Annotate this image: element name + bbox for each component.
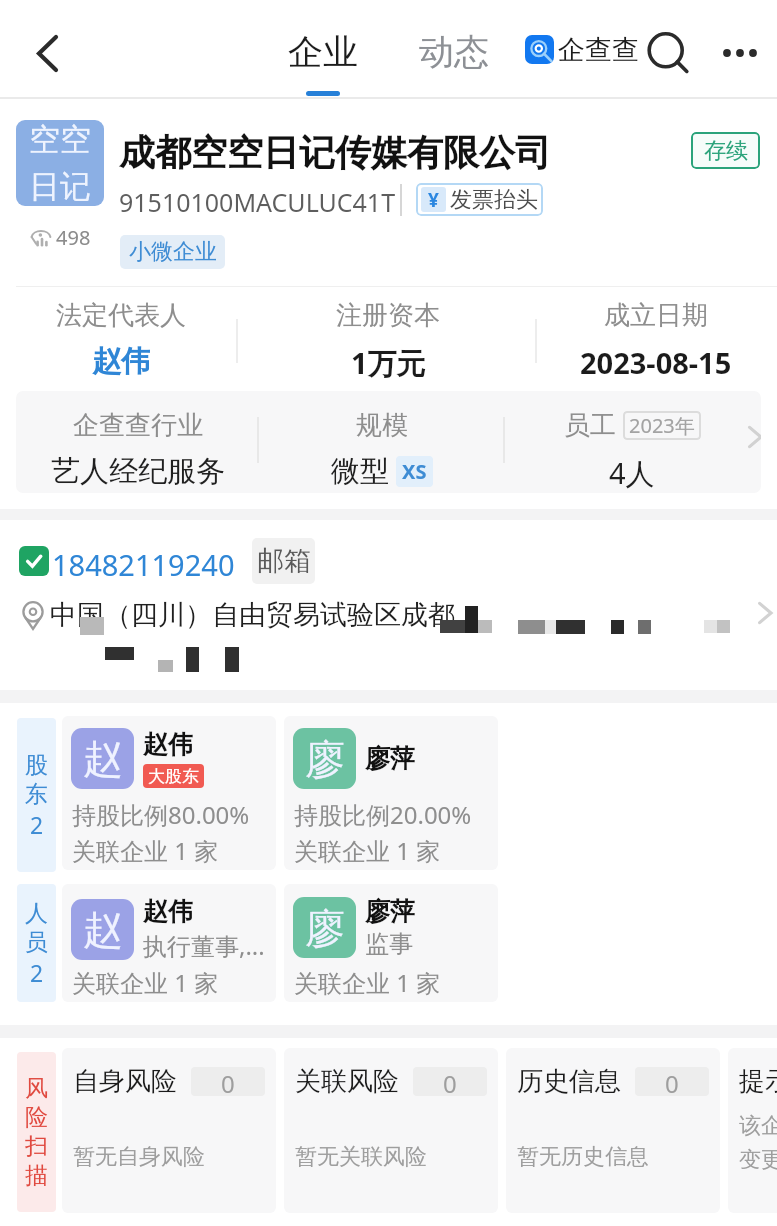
button[interactable]: 风 — [17, 1052, 56, 1212]
staticText: 廖萍 — [365, 896, 415, 927]
staticText: 描 — [25, 1161, 48, 1190]
staticText: 股 — [25, 751, 48, 780]
button[interactable]: 廖 — [284, 884, 498, 1002]
staticText: 廖萍 — [365, 743, 415, 774]
staticText: 4人 — [609, 453, 655, 493]
staticText: 91510100MACULUC41T — [119, 185, 396, 219]
staticText: 提示 — [739, 1065, 777, 1098]
staticText: 成立日期 — [604, 299, 708, 332]
staticText: 自身风险 — [73, 1065, 177, 1098]
staticText: 持股比例20.00% — [294, 798, 472, 831]
button[interactable]: 中国（四川）自由贸易试验区成都 — [18, 598, 455, 632]
staticText: 2023-08-15 — [580, 343, 732, 382]
staticText: 0 — [665, 1067, 679, 1096]
button[interactable]: 自身风险 — [62, 1048, 276, 1213]
button[interactable]: 动态 — [411, 30, 497, 78]
staticText: 暂无关联风险 — [295, 1143, 427, 1171]
staticText: 日记 — [29, 167, 91, 206]
staticText: 空空 — [29, 120, 91, 159]
staticText: 关联企业 1 家 — [72, 834, 219, 867]
staticText: 执行董事,... — [143, 929, 265, 962]
staticText: 2 — [30, 809, 44, 840]
staticText: 注册资本 — [336, 299, 440, 332]
staticText: 关联企业 1 家 — [294, 966, 441, 999]
staticText: 2023年 — [629, 412, 695, 439]
staticText: 企业 — [288, 30, 358, 74]
staticText: XS — [402, 458, 427, 485]
staticText: 艺人经纪服务 — [51, 453, 225, 490]
staticText: 风 — [25, 1074, 48, 1103]
staticText: 廖 — [305, 903, 345, 953]
staticText: 险 — [25, 1103, 48, 1132]
staticText: 赵伟 — [143, 729, 193, 760]
button[interactable]: 邮箱 — [252, 538, 315, 584]
button[interactable]: 法定代表人 — [0, 299, 242, 383]
staticText: 该企 — [739, 1112, 777, 1140]
staticText: 变更 — [739, 1146, 777, 1174]
button[interactable]: 小微企业 — [120, 235, 225, 269]
staticText: 员工 — [564, 409, 616, 442]
staticText: 人 — [25, 899, 48, 928]
staticText: 监事 — [365, 929, 413, 959]
staticText: 员 — [25, 928, 48, 957]
staticText: 扫 — [25, 1132, 48, 1161]
staticText: 存续 — [704, 137, 748, 165]
button[interactable]: 注册资本 — [242, 299, 534, 383]
button[interactable]: 企业 — [280, 30, 366, 96]
button[interactable]: Search — [640, 26, 696, 82]
staticText: 0 — [221, 1067, 235, 1096]
staticText: 18482119240 — [52, 545, 235, 577]
staticText: 企查查 — [558, 33, 639, 65]
staticText: 0 — [443, 1067, 457, 1096]
staticText: 大股东 — [148, 766, 199, 787]
staticText: 赵伟 — [92, 343, 150, 380]
button[interactable]: Back — [18, 24, 77, 83]
button[interactable]: 关联风险 — [284, 1048, 498, 1213]
button[interactable]: 企查查 — [525, 33, 639, 65]
staticText: 动态 — [419, 30, 489, 74]
button[interactable]: 空空 — [16, 120, 104, 206]
staticText: 规模 — [356, 409, 408, 442]
staticText: 中国（四川）自由贸易试验区成都 — [50, 598, 455, 632]
staticText: 持股比例80.00% — [72, 798, 250, 831]
button[interactable]: More options — [712, 25, 768, 81]
staticText: 498 — [56, 224, 91, 251]
staticText: 东 — [25, 780, 48, 809]
button[interactable]: 18482119240 — [19, 545, 235, 577]
button[interactable]: 人 — [17, 884, 56, 1002]
button[interactable]: 赵 — [62, 716, 276, 870]
staticText: 关联企业 1 家 — [72, 966, 219, 999]
staticText: 赵 — [83, 905, 123, 955]
button[interactable]: 股 — [17, 718, 56, 872]
staticText: 2 — [30, 957, 44, 988]
staticText: 小微企业 — [129, 238, 217, 266]
staticText: ¥ — [428, 187, 439, 212]
staticText: 赵伟 — [143, 896, 193, 927]
staticText: 暂无历史信息 — [517, 1143, 649, 1171]
button[interactable]: 提示 — [728, 1048, 777, 1213]
button[interactable]: 成都空空日记传媒有限公司 — [119, 130, 551, 175]
staticText: 廖 — [305, 734, 345, 784]
staticText: 暂无自身风险 — [73, 1143, 205, 1171]
staticText: 关联企业 1 家 — [294, 834, 441, 867]
staticText: 法定代表人 — [56, 299, 186, 332]
button[interactable]: ¥ — [416, 183, 543, 216]
staticText: 历史信息 — [517, 1065, 621, 1098]
staticText: 企查查行业 — [73, 409, 203, 442]
button[interactable]: 成立日期 — [534, 299, 777, 383]
button[interactable]: 历史信息 — [506, 1048, 720, 1213]
staticText: 赵 — [83, 734, 123, 784]
staticText: 发票抬头 — [450, 186, 538, 214]
button[interactable]: 企查查行业 — [16, 391, 761, 493]
button[interactable]: 存续 — [691, 132, 760, 169]
staticText: 微型 — [331, 453, 389, 490]
button[interactable]: 赵 — [62, 884, 276, 1002]
staticText: 邮箱 — [257, 544, 311, 578]
staticText: 1万元 — [351, 343, 426, 383]
staticText: 关联风险 — [295, 1065, 399, 1098]
button[interactable]: 廖 — [284, 716, 498, 870]
